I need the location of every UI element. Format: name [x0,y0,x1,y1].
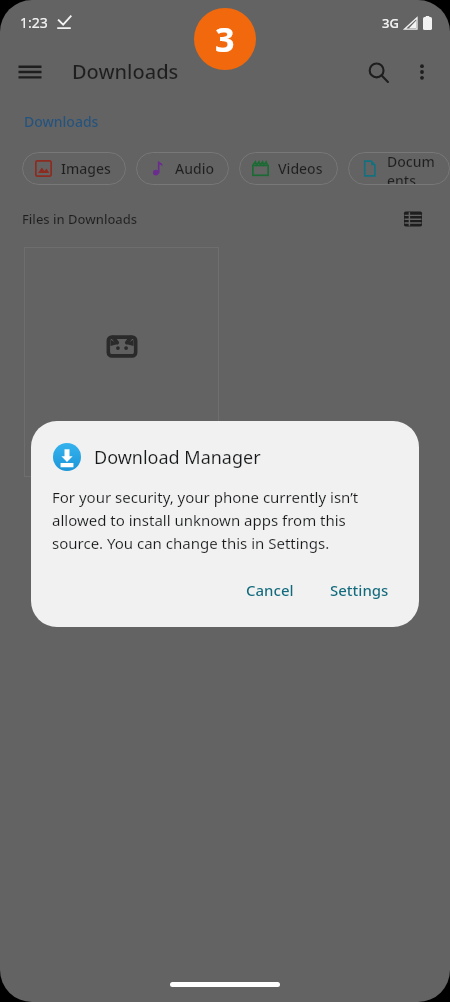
staticText: Images [61,159,111,178]
button[interactable]: Videos [239,152,338,185]
button[interactable]: 3 notifications [194,8,256,70]
button[interactable] [24,247,219,477]
button[interactable]: Search [356,50,400,94]
button[interactable]: Downloads [18,110,105,133]
staticText: Files in Downloads [22,210,138,228]
staticText: Videos [278,159,323,178]
button[interactable]: Settings [318,573,401,607]
staticText: Cancel [246,580,294,600]
staticText: 3 [215,16,235,62]
staticText: Audio [175,159,214,178]
staticText: 1:23 [20,13,48,32]
button[interactable]: Documents [348,152,450,185]
staticText: Documents [387,152,435,185]
staticText: Downloads [24,112,99,131]
button[interactable]: Cancel [234,573,306,607]
button[interactable]: Open navigation drawer [8,50,52,94]
staticText: Downloads [72,58,179,85]
staticText: For your security, your phone currently … [52,487,393,553]
staticText: Download Manager [94,445,261,470]
button[interactable]: Switch to list view [400,206,426,232]
button[interactable]: More options [400,50,444,94]
button[interactable]: Images [22,152,126,185]
button[interactable]: Audio [136,152,229,185]
staticText: Settings [330,580,389,600]
staticText: 3G [382,14,399,32]
